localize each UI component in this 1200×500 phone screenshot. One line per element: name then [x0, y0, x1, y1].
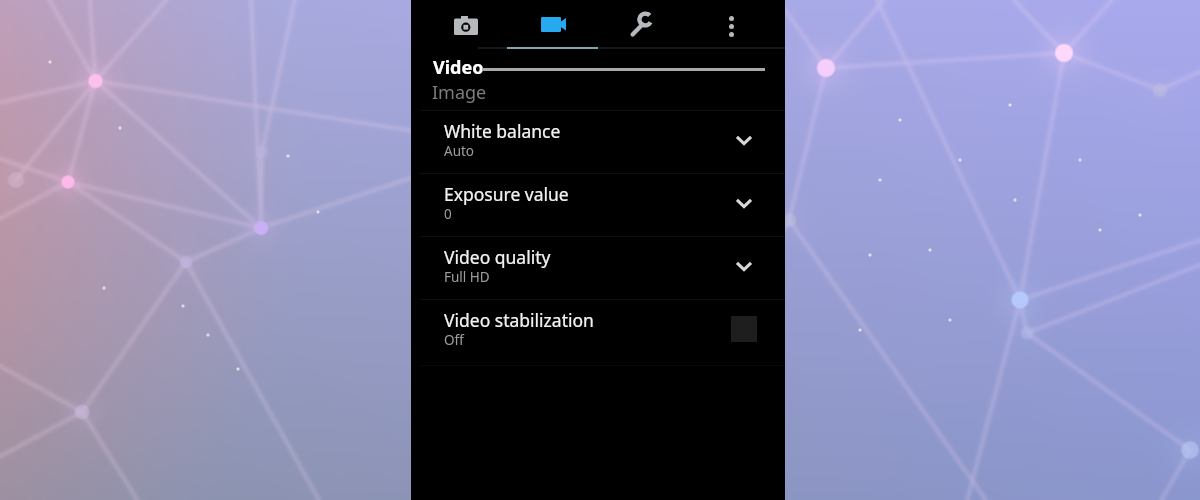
button[interactable]: Video quality	[411, 236, 785, 299]
button[interactable]: Video	[537, 11, 569, 37]
staticText: Auto	[444, 142, 475, 160]
staticText: White balance	[444, 119, 561, 143]
button[interactable]: Camera	[452, 12, 480, 38]
staticText: 0	[444, 205, 452, 223]
button[interactable]: Video stabilization	[411, 299, 785, 362]
staticText: Video stabilization	[444, 308, 594, 332]
button[interactable]: Exposure value	[411, 173, 785, 236]
staticText: Full HD	[444, 268, 490, 286]
staticText: Image	[432, 80, 487, 105]
button[interactable]: More options	[719, 13, 743, 39]
button[interactable]: White balance	[411, 110, 785, 173]
button[interactable]: Settings	[627, 10, 655, 38]
staticText: Exposure value	[444, 182, 569, 206]
staticText: Video quality	[444, 245, 551, 269]
staticText: Off	[444, 331, 464, 349]
staticText: Video	[433, 55, 484, 80]
